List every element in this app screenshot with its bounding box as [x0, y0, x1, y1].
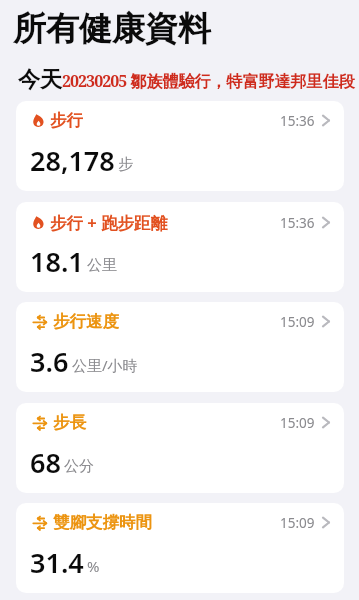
- staticText: 公分: [64, 457, 94, 476]
- button[interactable]: 步行: [16, 101, 344, 191]
- staticText: 15:36: [280, 112, 315, 130]
- staticText: 步長: [53, 412, 86, 433]
- staticText: 3.6: [30, 343, 69, 380]
- staticText: 所有健康資料: [13, 8, 211, 50]
- button[interactable]: 步長: [16, 403, 344, 493]
- staticText: 18.1: [30, 243, 84, 280]
- staticText: 31.4: [30, 544, 84, 581]
- staticText: 公里: [87, 256, 117, 275]
- staticText: 步: [118, 155, 133, 174]
- staticText: 15:09: [280, 514, 315, 532]
- staticText: 步行 + 跑步距離: [50, 211, 168, 234]
- staticText: 15:36: [280, 214, 315, 232]
- staticText: %: [87, 556, 100, 576]
- staticText: 今天20230205 鄒族體驗行，特富野達邦里佳段: [18, 66, 355, 94]
- button[interactable]: 步行速度: [16, 302, 344, 392]
- staticText: 步行速度: [53, 311, 119, 332]
- staticText: 68: [30, 444, 61, 481]
- staticText: 步行: [50, 110, 83, 131]
- staticText: 15:09: [280, 313, 315, 331]
- staticText: 雙腳支撐時間: [53, 512, 152, 533]
- button[interactable]: 步行 + 跑步距離: [16, 202, 344, 292]
- staticText: 公里/小時: [72, 355, 138, 375]
- staticText: 28,178: [30, 142, 115, 179]
- staticText: 15:09: [280, 414, 315, 432]
- button[interactable]: 雙腳支撐時間: [16, 503, 344, 593]
